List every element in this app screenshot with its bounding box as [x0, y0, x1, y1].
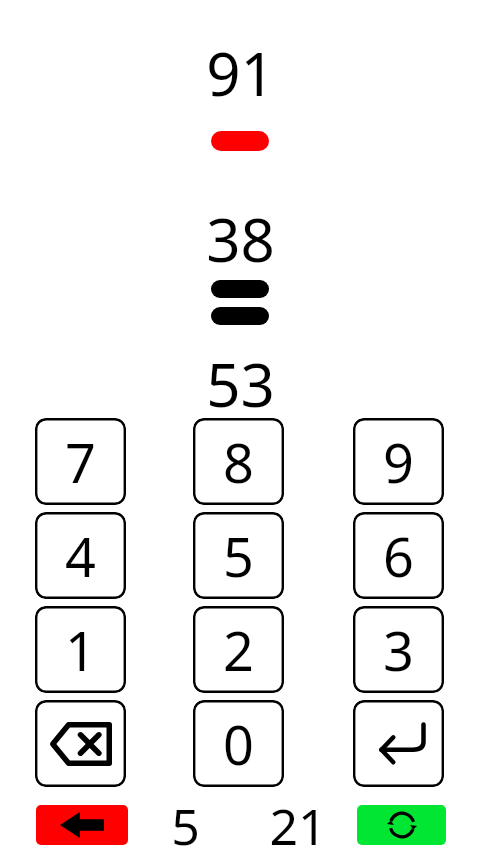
- staticText: 53: [206, 343, 275, 424]
- button[interactable]: Refresh: [357, 805, 446, 845]
- button[interactable]: 5: [193, 512, 284, 599]
- staticText: 2: [223, 613, 254, 687]
- staticText: 6: [383, 519, 414, 593]
- button[interactable]: 4: [35, 512, 126, 599]
- button[interactable]: Backspace: [35, 700, 126, 787]
- staticText: 91: [206, 32, 275, 113]
- button[interactable]: 9: [353, 418, 444, 505]
- button[interactable]: 6: [353, 512, 444, 599]
- staticText: 5: [171, 792, 200, 853]
- staticText: 9: [383, 425, 414, 499]
- staticText: 4: [65, 519, 96, 593]
- staticText: 7: [65, 425, 96, 499]
- staticText: 3: [383, 613, 414, 687]
- staticText: 1: [65, 613, 96, 687]
- button[interactable]: Back: [36, 805, 128, 845]
- button[interactable]: 0: [193, 700, 284, 787]
- button[interactable]: 2: [193, 606, 284, 693]
- button[interactable]: Enter: [353, 700, 444, 787]
- staticText: 0: [223, 707, 254, 781]
- staticText: 38: [206, 198, 275, 279]
- staticText: 8: [223, 425, 254, 499]
- button[interactable]: 1: [35, 606, 126, 693]
- button[interactable]: 7: [35, 418, 126, 505]
- button[interactable]: 3: [353, 606, 444, 693]
- button[interactable]: 8: [193, 418, 284, 505]
- staticText: 21: [269, 792, 327, 853]
- staticText: 5: [223, 519, 254, 593]
